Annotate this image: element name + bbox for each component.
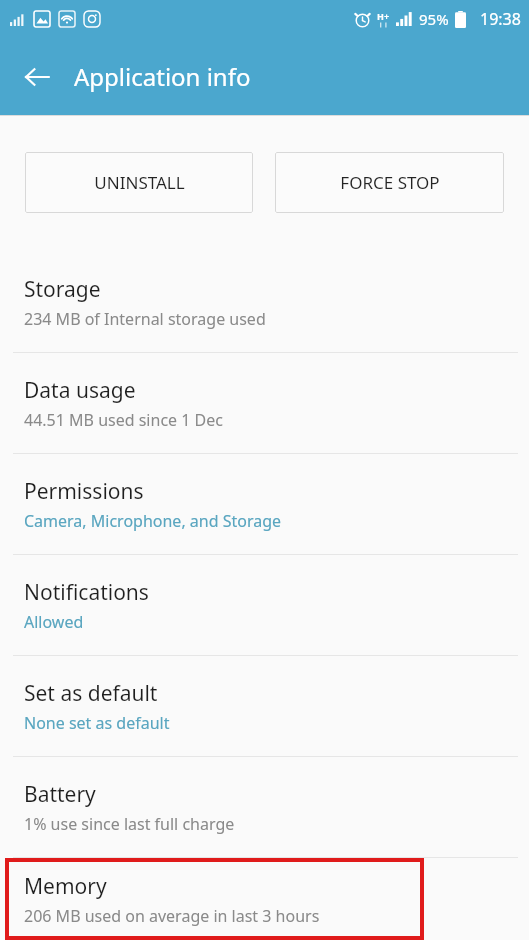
staticText: 1% use since last full charge (24, 813, 235, 835)
staticText: Application info (74, 60, 251, 93)
staticText: Battery (24, 780, 96, 809)
staticText: Notifications (24, 578, 149, 607)
button[interactable]: Storage (0, 252, 529, 352)
staticText: Storage (24, 275, 101, 304)
staticText: 234 MB of Internal storage used (24, 308, 266, 330)
staticText: Camera, Microphone, and Storage (24, 510, 282, 532)
staticText: Permissions (24, 477, 144, 506)
button[interactable]: Memory (5, 858, 424, 940)
staticText: FORCE STOP (340, 171, 440, 194)
staticText: Set as default (24, 679, 158, 708)
button[interactable]: Back (12, 52, 62, 102)
button[interactable]: Notifications (0, 555, 529, 655)
button[interactable]: Battery (0, 757, 529, 857)
staticText: 206 MB used on average in last 3 hours (24, 905, 320, 927)
button[interactable]: Permissions (0, 454, 529, 554)
staticText: Data usage (24, 376, 136, 405)
staticText: None set as default (24, 712, 170, 734)
button[interactable]: Set as default (0, 656, 529, 756)
staticText: Allowed (24, 611, 84, 633)
button[interactable]: Data usage (0, 353, 529, 453)
button[interactable]: FORCE STOP (275, 152, 504, 213)
button[interactable]: UNINSTALL (25, 152, 253, 213)
staticText: UNINSTALL (94, 171, 185, 194)
staticText: H+ (377, 10, 390, 22)
staticText: 19:38 (480, 8, 521, 30)
staticText: Memory (24, 872, 107, 901)
staticText: 95% (419, 9, 449, 29)
staticText: 44.51 MB used since 1 Dec (24, 409, 223, 431)
